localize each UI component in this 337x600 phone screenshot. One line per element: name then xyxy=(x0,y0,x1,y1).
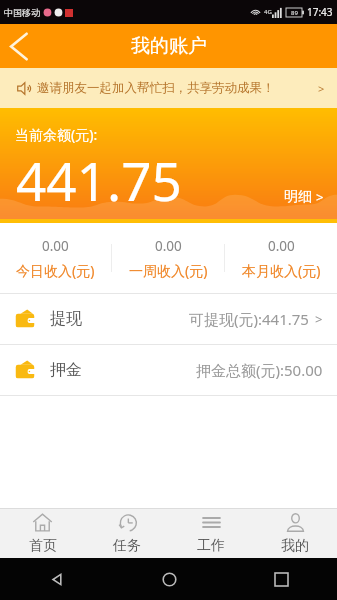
button[interactable]: 邀请朋友一起加入帮忙扫，共享劳动成果！ xyxy=(0,68,337,108)
staticText: 押金总额(元):50.00 xyxy=(196,360,323,380)
staticText: 押金 xyxy=(50,360,82,380)
button[interactable]: 0.00 xyxy=(225,237,337,280)
staticText: 一周收入(元) xyxy=(129,261,208,280)
staticText: > xyxy=(318,81,325,96)
staticText: 提现 xyxy=(50,309,82,329)
staticText: 441.75 xyxy=(16,144,182,216)
staticText: 0.00 xyxy=(42,237,69,255)
button[interactable]: 0.00 xyxy=(112,237,224,280)
button[interactable]: 工作 xyxy=(169,508,253,558)
staticText: 4G xyxy=(264,8,272,16)
button[interactable]: 我的 xyxy=(253,508,337,558)
button[interactable]: 押金 xyxy=(0,345,337,395)
staticText: 邀请朋友一起加入帮忙扫，共享劳动成果！ xyxy=(37,80,275,96)
staticText: 今日收入(元) xyxy=(16,261,95,280)
button[interactable]: 首页 xyxy=(0,508,85,558)
staticText: 本月收入(元) xyxy=(242,261,321,280)
staticText: 89 xyxy=(291,9,298,17)
staticText: > xyxy=(315,310,323,328)
staticText: 中国移动 xyxy=(4,7,40,18)
button[interactable]: 任务 xyxy=(85,508,169,558)
button[interactable]: 提现 xyxy=(0,294,337,344)
button[interactable]: 0.00 xyxy=(0,237,111,280)
staticText: 我的账户 xyxy=(131,34,207,58)
staticText: 明细 xyxy=(284,188,312,206)
button[interactable]: Recents xyxy=(263,561,299,597)
button[interactable]: 明细 xyxy=(284,188,324,206)
staticText: 0.00 xyxy=(268,237,295,255)
staticText: 工作 xyxy=(197,537,225,555)
staticText: 任务 xyxy=(113,537,141,555)
button[interactable]: Back xyxy=(39,561,75,597)
staticText: 首页 xyxy=(29,537,57,555)
button[interactable]: Home xyxy=(151,561,187,597)
staticText: 可提现(元):441.75 xyxy=(189,309,309,329)
staticText: 当前余额(元): xyxy=(15,125,98,144)
button[interactable]: 返回 xyxy=(0,24,42,68)
staticText: 0.00 xyxy=(155,237,182,255)
staticText: > xyxy=(316,188,324,206)
staticText: 17:43 xyxy=(307,5,333,19)
staticText: 我的 xyxy=(281,537,309,555)
